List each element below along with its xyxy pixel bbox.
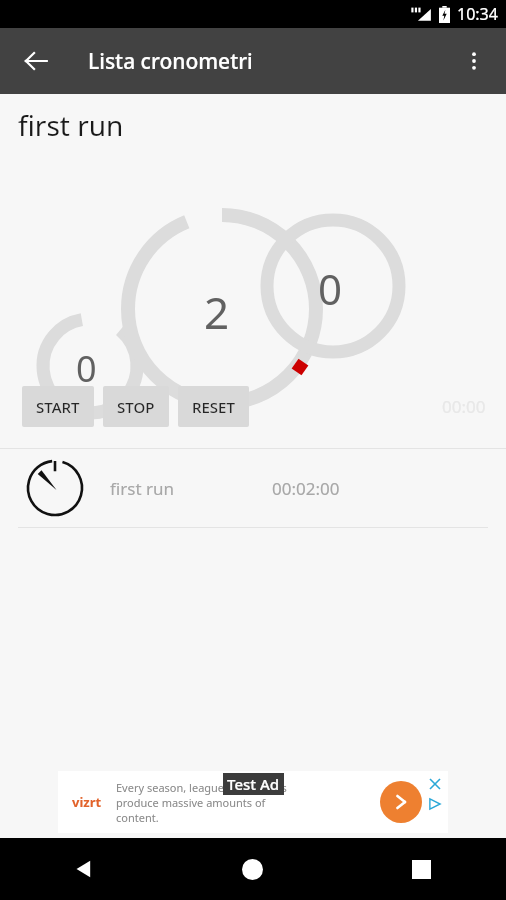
staticText: 00:00 — [442, 395, 486, 418]
staticText: produce massive amounts of — [116, 795, 266, 810]
staticText: Every season, leagues and teams — [116, 780, 287, 795]
button[interactable]: START — [22, 386, 94, 427]
button[interactable]: Ad info — [427, 796, 443, 812]
button[interactable]: STOP — [103, 386, 169, 427]
staticText: START — [36, 397, 80, 417]
staticText: RESET — [192, 397, 235, 417]
button[interactable]: More options — [450, 37, 498, 85]
button[interactable]: Close ad — [427, 776, 443, 792]
staticText: vizrt — [72, 793, 102, 811]
staticText: 0 — [318, 260, 343, 317]
button[interactable]: first run — [0, 449, 506, 527]
staticText: first run — [110, 477, 174, 500]
staticText: first run — [18, 106, 124, 144]
staticText: STOP — [117, 397, 155, 417]
staticText: 00:02:00 — [272, 477, 340, 500]
button[interactable]: Back — [10, 35, 62, 87]
button[interactable]: RESET — [178, 386, 249, 427]
staticText: Lista cronometri — [88, 47, 253, 76]
staticText: 0 — [76, 344, 97, 393]
button[interactable]: Home — [168, 838, 337, 900]
staticText: content. — [116, 810, 159, 825]
button[interactable]: vizrt — [58, 771, 448, 833]
button[interactable]: Open ad — [380, 781, 422, 823]
staticText: Test Ad — [227, 774, 280, 794]
button[interactable]: Recent apps — [337, 838, 506, 900]
staticText: 10:34 — [457, 3, 498, 25]
staticText: 2 — [204, 282, 230, 342]
button[interactable]: Back — [0, 838, 168, 900]
